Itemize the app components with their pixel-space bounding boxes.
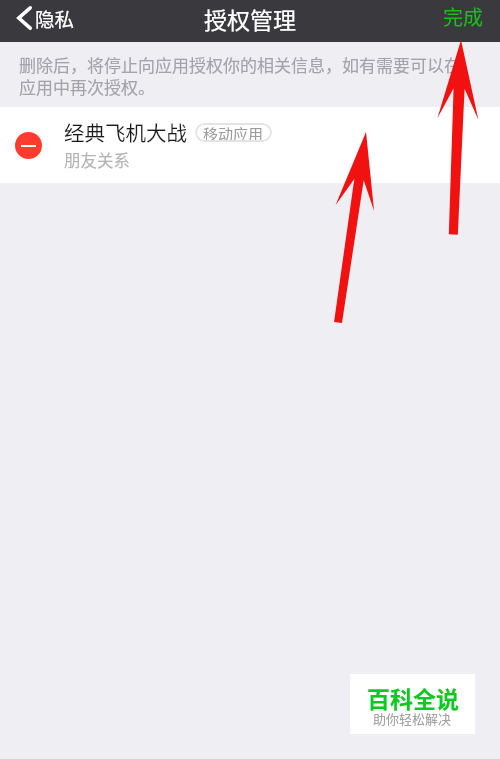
staticText: 授权管理: [204, 2, 296, 35]
staticText: 经典飞机大战: [64, 117, 187, 147]
staticText: 删除后，将停止向应用授权你的相关信息，如有需要可以在应用中再次授权。: [19, 52, 469, 99]
staticText: 朋友关系: [64, 148, 130, 172]
button[interactable]: 删除授权: [0, 107, 500, 183]
staticText: 移动应用: [203, 123, 264, 142]
button[interactable]: 隐私: [0, 0, 85, 36]
button[interactable]: 完成: [427, 0, 500, 34]
staticText: 完成: [443, 2, 483, 31]
staticText: 助你轻松解决: [373, 709, 452, 728]
staticText: 隐私: [35, 4, 75, 32]
other: 删除授权: [15, 132, 42, 159]
staticText: 百科全说: [367, 681, 459, 714]
